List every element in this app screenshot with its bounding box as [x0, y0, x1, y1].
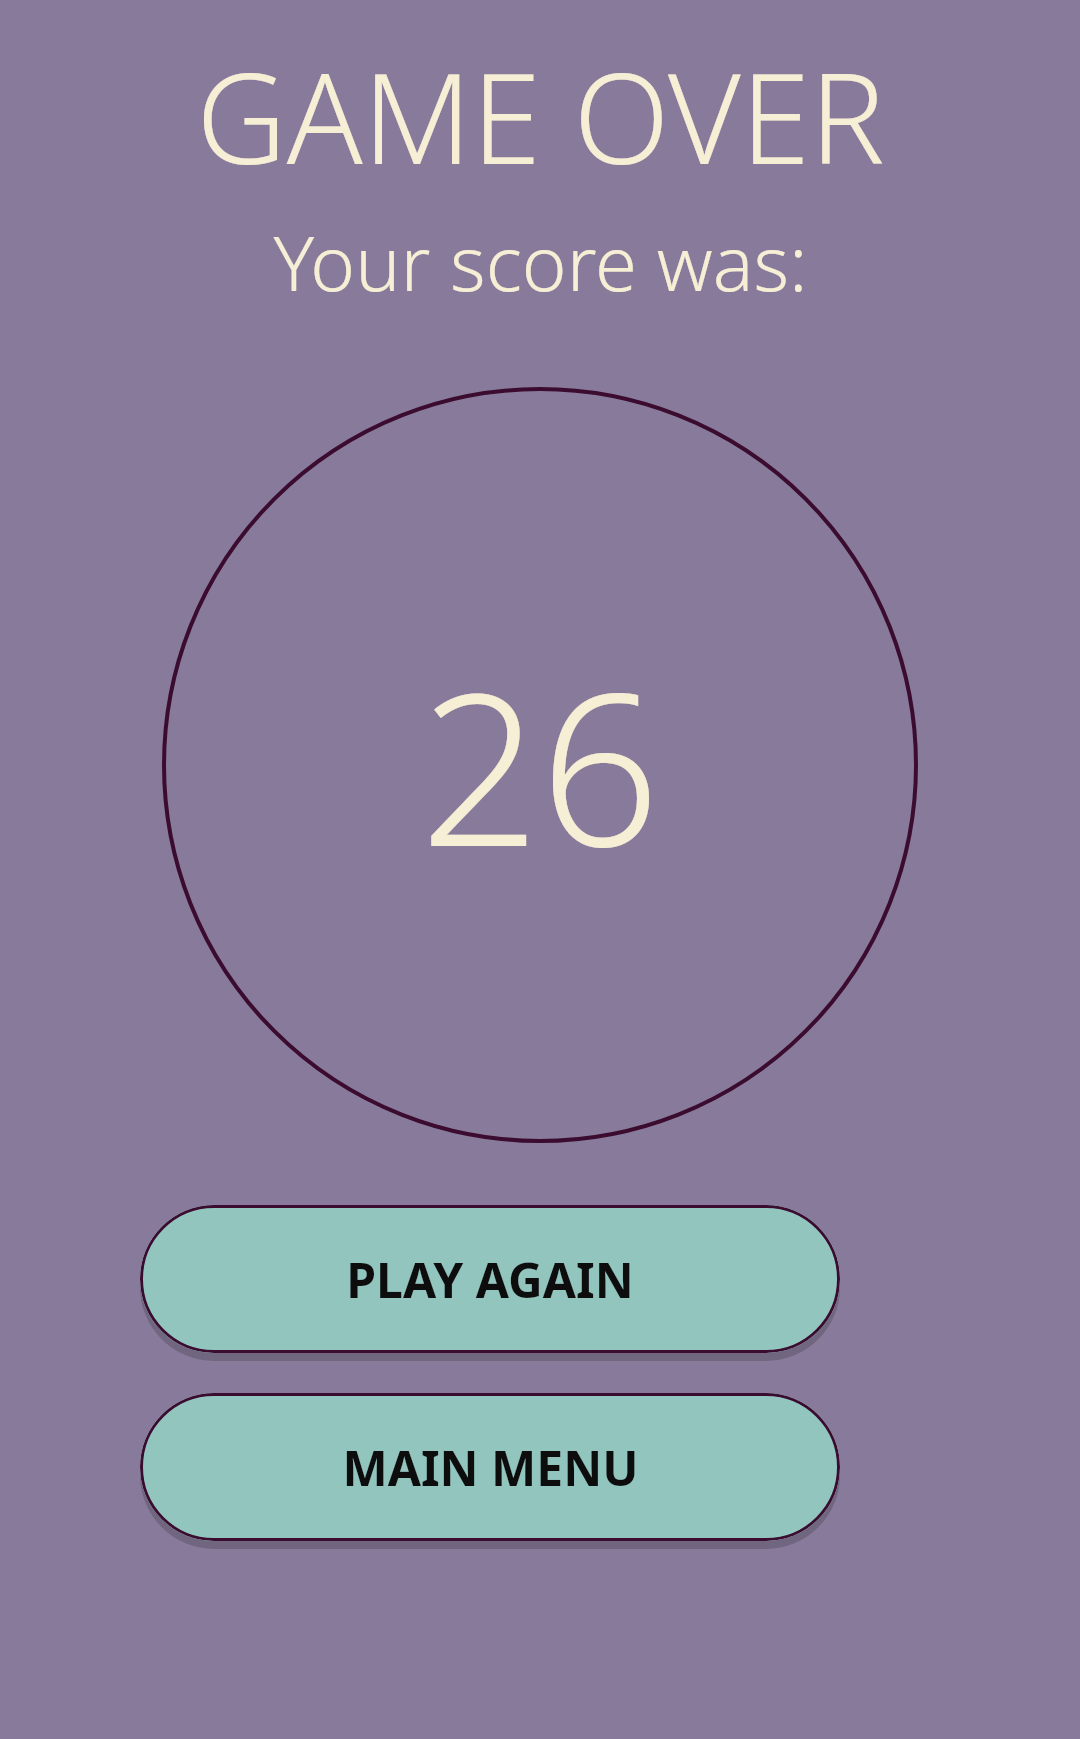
staticText: Your score was:: [273, 210, 808, 314]
staticText: MAIN MENU: [342, 1435, 639, 1500]
staticText: GAME OVER: [196, 30, 885, 200]
button[interactable]: PLAY AGAIN: [140, 1205, 840, 1353]
button[interactable]: MAIN MENU: [140, 1393, 840, 1541]
staticText: 26: [420, 622, 660, 908]
staticText: PLAY AGAIN: [346, 1247, 634, 1312]
